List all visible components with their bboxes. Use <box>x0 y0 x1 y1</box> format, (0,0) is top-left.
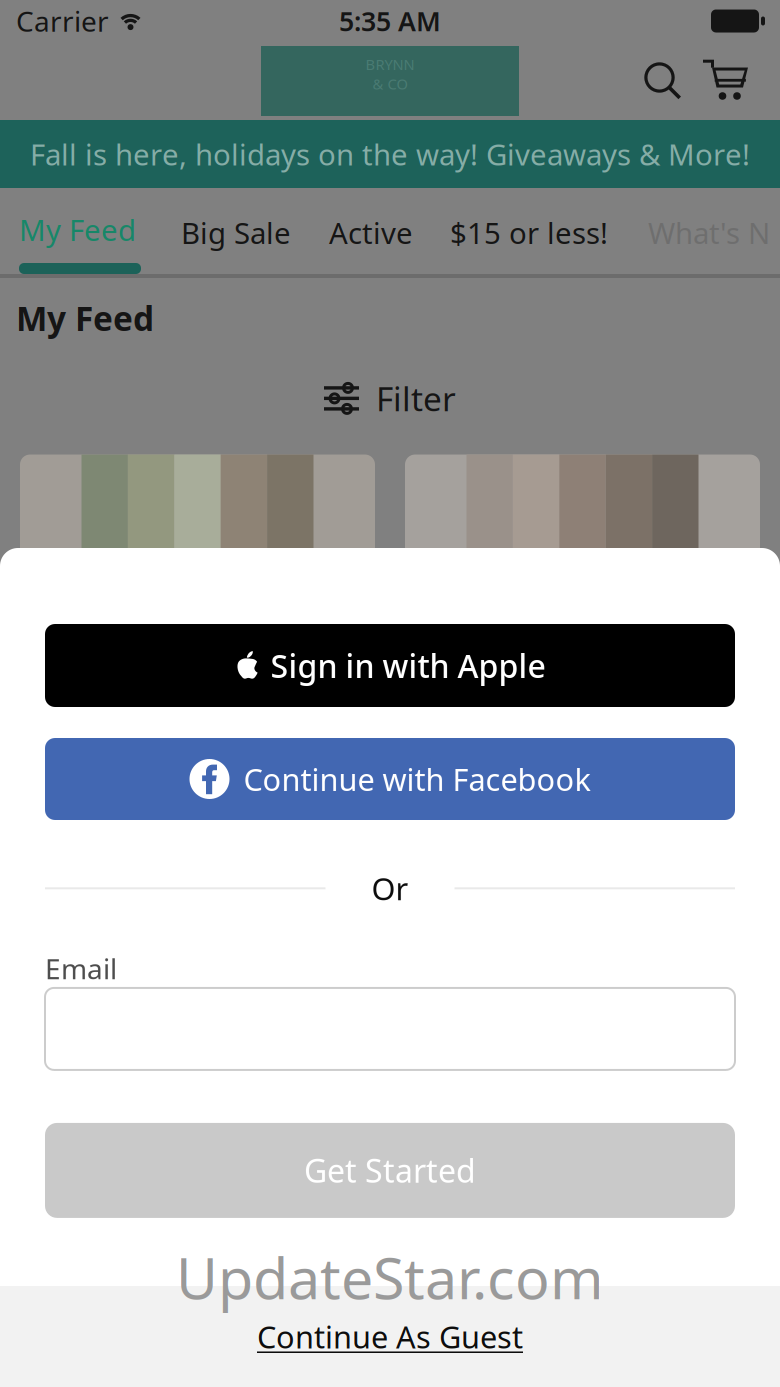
staticText: Get Started <box>304 1149 476 1192</box>
button[interactable]: Get Started <box>45 1123 735 1218</box>
staticText: Or <box>371 868 408 909</box>
staticText: & CO <box>372 74 407 93</box>
button[interactable]: What's N <box>648 213 770 252</box>
staticText: Email <box>45 950 117 987</box>
staticText: UpdateStar.com <box>176 1239 604 1315</box>
staticText: What's N <box>648 213 770 252</box>
staticText: My Feed <box>16 296 154 340</box>
staticText: Big Sale <box>181 213 291 252</box>
button[interactable]: $15 or less! <box>450 213 608 252</box>
staticText: Continue As Guest <box>257 1316 523 1357</box>
staticText: Filter <box>376 376 456 421</box>
button[interactable]: Cart <box>703 58 749 103</box>
staticText: Continue with Facebook <box>243 759 590 799</box>
button[interactable]: Continue with Facebook <box>45 738 735 820</box>
staticText: My Feed <box>19 210 136 249</box>
button[interactable]: Search <box>643 61 683 101</box>
staticText: 5:35 AM <box>339 3 441 39</box>
button[interactable] <box>45 988 735 1070</box>
button[interactable]: Continue As Guest <box>0 1286 780 1387</box>
button[interactable]: Sign in with Apple <box>45 624 735 707</box>
staticText: BRYNN <box>365 54 414 74</box>
staticText: $15 or less! <box>450 213 608 252</box>
button[interactable]: Active <box>329 213 413 252</box>
button[interactable]: My Feed <box>19 210 141 274</box>
staticText: Carrier <box>16 2 109 40</box>
staticText: Sign in with Apple <box>270 644 545 687</box>
button[interactable]: Filter <box>0 376 780 421</box>
button[interactable]: Big Sale <box>181 213 291 252</box>
staticText: Fall is here, holidays on the way! Givea… <box>30 134 750 173</box>
staticText: Active <box>329 213 413 252</box>
